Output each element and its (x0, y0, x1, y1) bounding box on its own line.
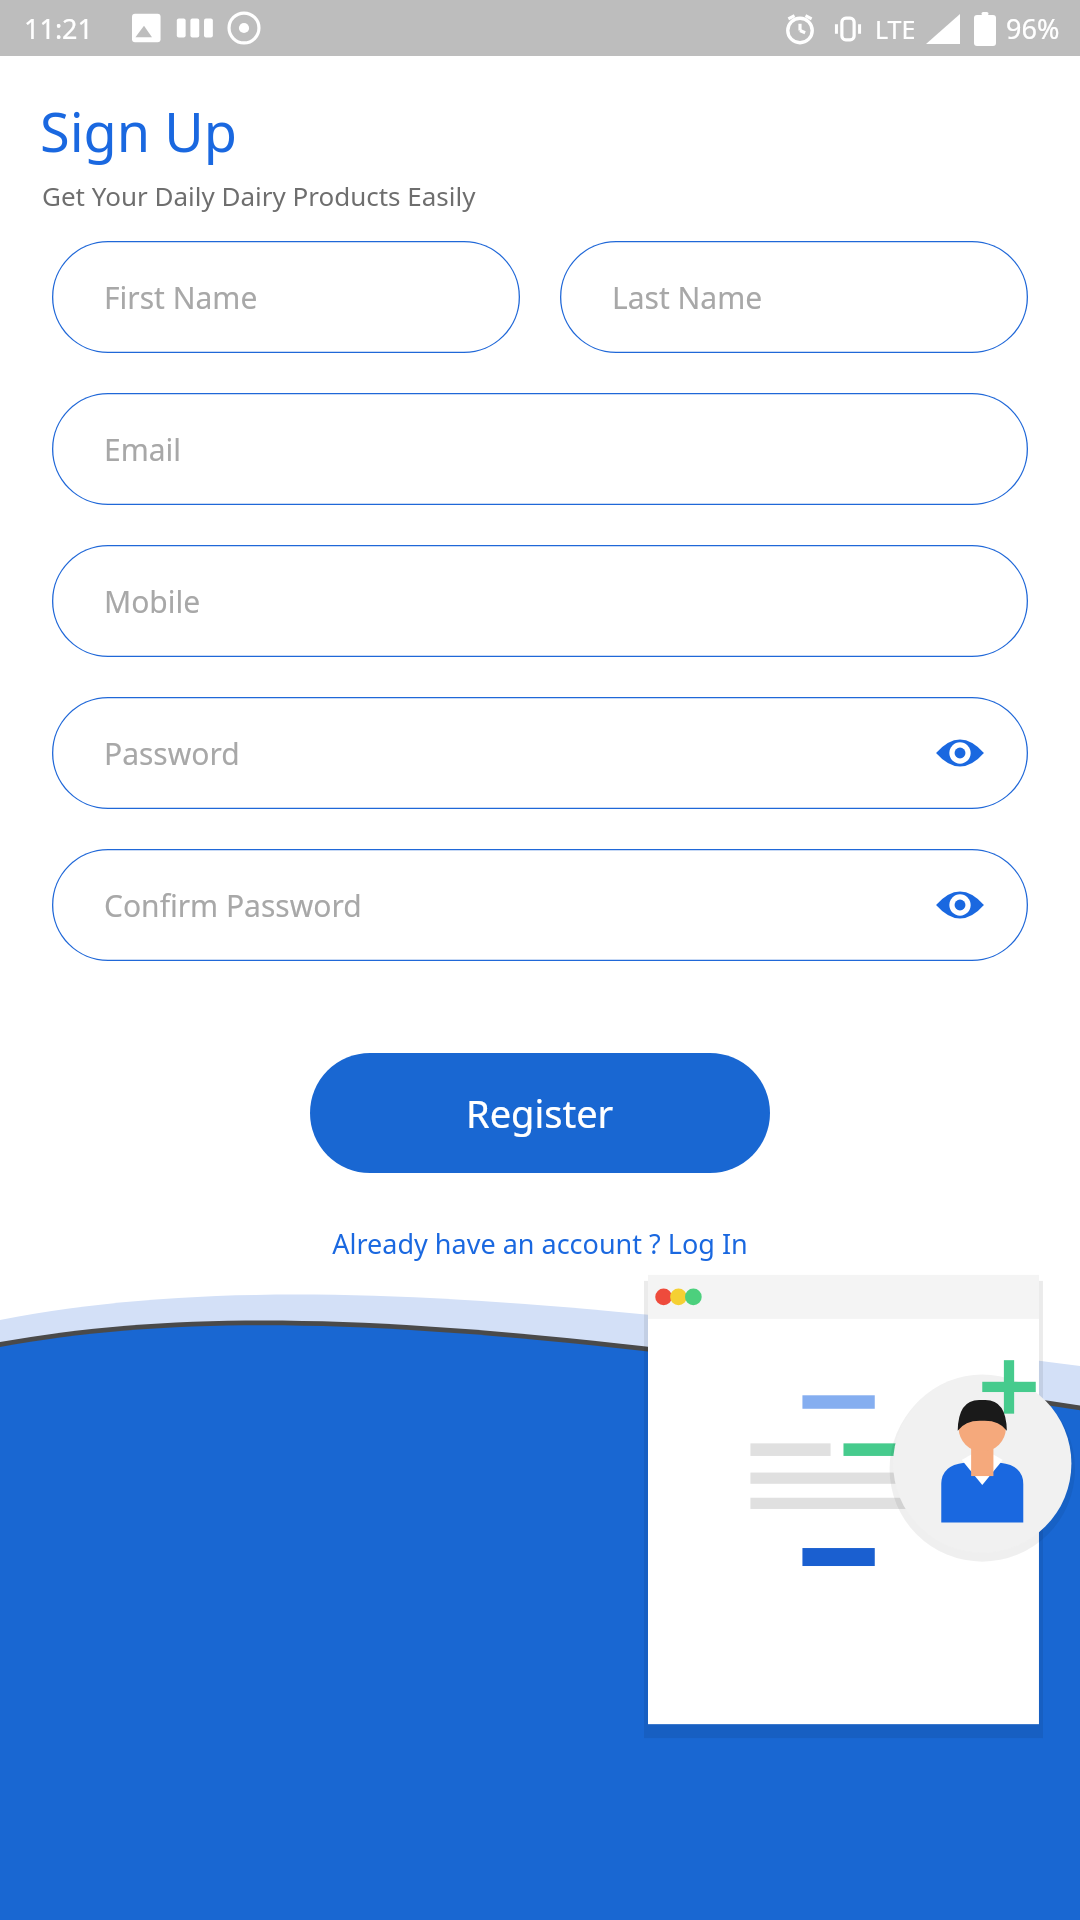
staticText: LTE (875, 12, 916, 46)
staticText: First Name (104, 277, 258, 318)
button[interactable]: Last Name (560, 241, 1028, 353)
staticText: Get Your Daily Dairy Products Easily (42, 178, 476, 213)
button[interactable]: Show password (928, 721, 992, 785)
button[interactable]: Mobile (52, 545, 1028, 657)
staticText: Mobile (104, 581, 201, 622)
button[interactable]: Email (52, 393, 1028, 505)
staticText: Last Name (612, 277, 763, 318)
staticText: Sign Up (40, 94, 237, 168)
staticText: Confirm Password (104, 885, 362, 926)
button[interactable]: Already have an account ? Log In (324, 1219, 756, 1268)
staticText: Email (104, 429, 182, 470)
button[interactable]: Confirm Password (52, 849, 1028, 961)
staticText: Register (466, 1087, 614, 1139)
button[interactable]: Register (310, 1053, 770, 1173)
staticText: 96% (1006, 10, 1060, 47)
staticText: 11:21 (24, 10, 94, 47)
button[interactable]: Show password (928, 873, 992, 937)
button[interactable]: Password (52, 697, 1028, 809)
staticText: Password (104, 733, 240, 774)
button[interactable]: First Name (52, 241, 520, 353)
staticText: Already have an account ? Log In (332, 1225, 748, 1262)
